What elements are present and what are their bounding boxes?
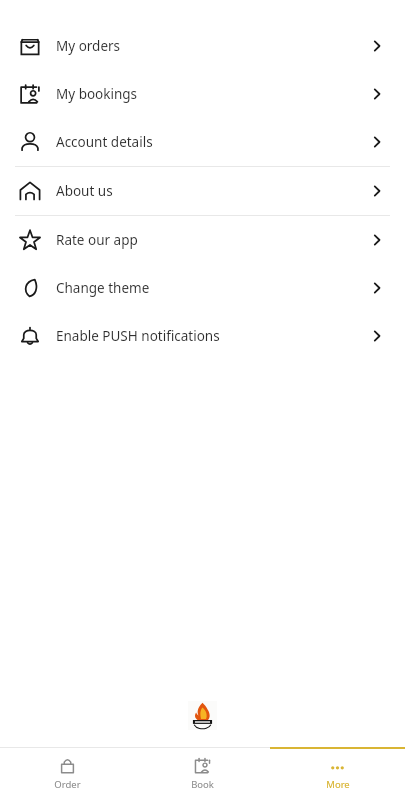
staticText: Rate our app (56, 231, 138, 249)
button[interactable]: Book (135, 747, 270, 800)
button[interactable]: About us (0, 167, 405, 215)
button[interactable]: Order (0, 747, 135, 800)
staticText: Order (54, 778, 81, 791)
button[interactable]: Change theme (0, 264, 405, 312)
button[interactable]: Rate our app (0, 216, 405, 264)
button[interactable]: Account details (0, 118, 405, 166)
button[interactable]: My orders (0, 22, 405, 70)
staticText: Enable PUSH notifications (56, 327, 220, 345)
staticText: My orders (56, 37, 121, 55)
staticText: Book (191, 778, 214, 791)
button[interactable]: My bookings (0, 70, 405, 118)
button[interactable]: More (270, 747, 405, 800)
staticText: Change theme (56, 279, 150, 297)
staticText: My bookings (56, 85, 138, 103)
staticText: Account details (56, 133, 153, 151)
staticText: More (326, 778, 350, 791)
button[interactable]: Enable PUSH notifications (0, 312, 405, 360)
staticText: About us (56, 182, 113, 200)
